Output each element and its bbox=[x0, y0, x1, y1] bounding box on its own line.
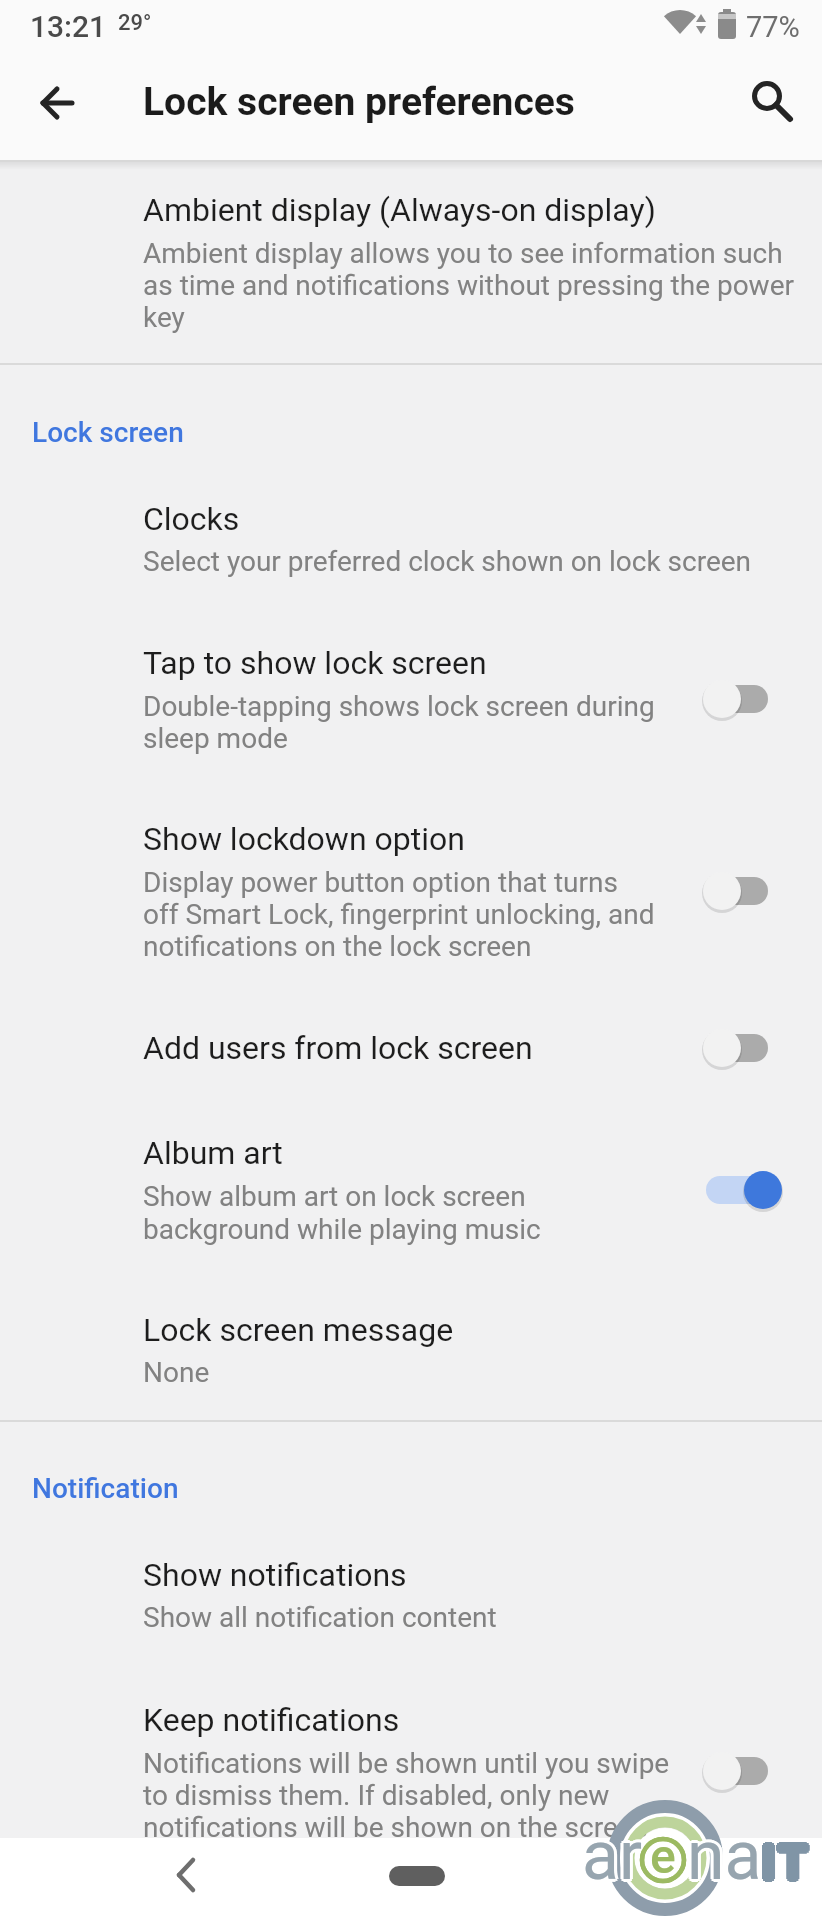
button[interactable] bbox=[698, 1024, 790, 1072]
staticText: e bbox=[650, 1831, 676, 1887]
button[interactable] bbox=[389, 1866, 445, 1886]
staticText: ar bbox=[584, 1818, 645, 1898]
staticText: to dismiss them. If disabled, only new bbox=[143, 1779, 610, 1812]
button[interactable] bbox=[0, 1118, 822, 1262]
staticText: Show all notification content bbox=[143, 1601, 497, 1634]
staticText: naIT bbox=[684, 1816, 808, 1896]
button[interactable] bbox=[0, 1004, 822, 1094]
staticText: Album art bbox=[143, 1134, 283, 1172]
staticText: e bbox=[647, 1828, 673, 1884]
button[interactable] bbox=[155, 1845, 215, 1905]
staticText: Lock screen message bbox=[143, 1311, 454, 1349]
button[interactable] bbox=[698, 1747, 790, 1795]
staticText: naIT bbox=[685, 1818, 809, 1898]
button[interactable] bbox=[0, 1294, 822, 1410]
staticText: off Smart Lock, fingerprint unlocking, a… bbox=[143, 898, 655, 931]
staticText: Add users from lock screen bbox=[143, 1029, 533, 1067]
button[interactable] bbox=[28, 74, 86, 132]
staticText: ar bbox=[582, 1813, 643, 1893]
staticText: ar bbox=[582, 1819, 643, 1899]
staticText: ar bbox=[580, 1814, 641, 1894]
staticText: ar bbox=[579, 1816, 640, 1896]
button[interactable] bbox=[0, 162, 822, 363]
staticText: naIT bbox=[689, 1814, 813, 1894]
staticText: Ambient display allows you to see inform… bbox=[143, 237, 783, 270]
button[interactable] bbox=[698, 1166, 790, 1214]
button[interactable] bbox=[698, 867, 790, 915]
staticText: Notifications will be shown until you sw… bbox=[143, 1747, 670, 1780]
staticText: naIT bbox=[687, 1819, 811, 1899]
staticText: as time and notifications without pressi… bbox=[143, 269, 794, 302]
button[interactable] bbox=[744, 72, 804, 132]
staticText: notifications on the lock screen bbox=[143, 930, 532, 963]
staticText: ar bbox=[580, 1818, 641, 1898]
staticText: Display power button option that turns bbox=[143, 866, 618, 899]
staticText: 29° bbox=[118, 10, 152, 36]
staticText: naIT bbox=[690, 1816, 814, 1896]
button[interactable] bbox=[0, 628, 822, 772]
staticText: Tap to show lock screen bbox=[143, 644, 487, 682]
staticText: e bbox=[652, 1826, 678, 1882]
button[interactable] bbox=[0, 804, 822, 976]
button[interactable] bbox=[0, 1684, 822, 1838]
staticText: Select your preferred clock shown on loc… bbox=[143, 545, 752, 578]
staticText: sleep mode bbox=[143, 722, 288, 755]
staticText: Clocks bbox=[143, 500, 240, 538]
staticText: naIT bbox=[685, 1814, 809, 1894]
staticText: Show notifications bbox=[143, 1556, 407, 1594]
staticText: ar bbox=[582, 1816, 643, 1896]
staticText: None bbox=[143, 1356, 210, 1389]
staticText: Keep notifications bbox=[143, 1701, 400, 1739]
staticText: ar bbox=[585, 1816, 646, 1896]
staticText: key bbox=[143, 301, 185, 334]
staticText: ar bbox=[584, 1814, 645, 1894]
staticText: 77% bbox=[746, 10, 800, 44]
staticText: Show lockdown option bbox=[143, 820, 465, 858]
staticText: e bbox=[648, 1830, 674, 1886]
staticText: Lock screen bbox=[32, 416, 184, 449]
staticText: Lock screen preferences bbox=[143, 79, 575, 125]
staticText: Ambient display (Always-on display) bbox=[143, 191, 656, 229]
staticText: background while playing music bbox=[143, 1213, 541, 1246]
button[interactable] bbox=[0, 1538, 822, 1652]
button[interactable] bbox=[698, 675, 790, 723]
staticText: notifications will be shown on the scree… bbox=[143, 1811, 649, 1844]
staticText: e bbox=[653, 1828, 679, 1884]
staticText: 13:21 bbox=[30, 9, 107, 44]
staticText: e bbox=[650, 1828, 676, 1884]
staticText: e bbox=[648, 1826, 674, 1882]
staticText: e bbox=[650, 1825, 676, 1881]
staticText: Show album art on lock screen bbox=[143, 1180, 526, 1213]
staticText: Double-tapping shows lock screen during bbox=[143, 690, 655, 723]
staticText: Notification bbox=[32, 1472, 179, 1505]
staticText: naIT bbox=[689, 1818, 813, 1898]
staticText: naIT bbox=[687, 1816, 811, 1896]
button[interactable] bbox=[0, 478, 822, 600]
staticText: naIT bbox=[687, 1813, 811, 1893]
staticText: e bbox=[652, 1830, 678, 1886]
